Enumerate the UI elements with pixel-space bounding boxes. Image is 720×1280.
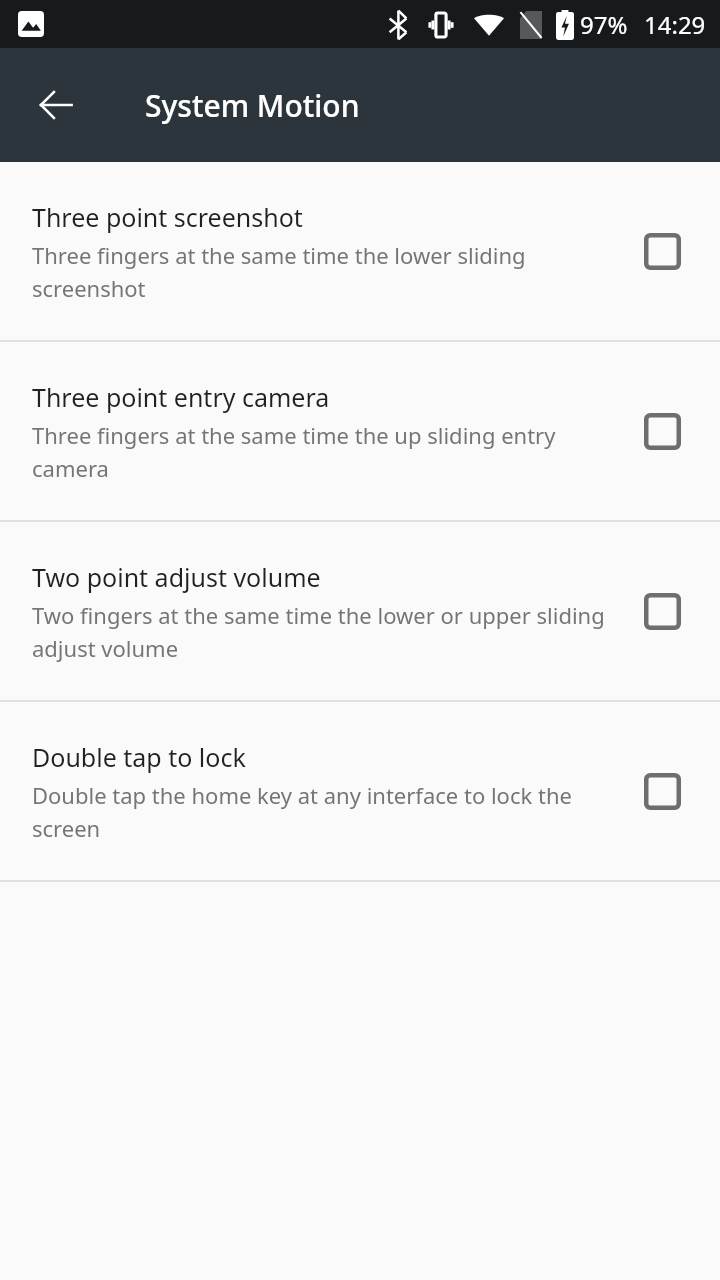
staticText: System Motion: [145, 85, 360, 126]
staticText: Two point adjust volume: [32, 560, 321, 594]
button[interactable]: Three point screenshot: [0, 162, 720, 340]
staticText: Double tap to lock: [32, 740, 246, 774]
button[interactable]: Double tap to lock: [0, 702, 720, 880]
staticText: 14:29: [644, 8, 706, 41]
button[interactable]: Double tap to lock checkbox: [634, 763, 690, 819]
staticText: Two fingers at the same time the lower o…: [32, 600, 614, 663]
staticText: Three point entry camera: [32, 380, 330, 414]
staticText: Three point screenshot: [32, 200, 303, 234]
staticText: 97%: [580, 8, 628, 41]
staticText: Three fingers at the same time the lower…: [32, 240, 614, 303]
button[interactable]: Two point adjust volume: [0, 522, 720, 700]
staticText: Three fingers at the same time the up sl…: [32, 420, 614, 483]
button[interactable]: Three point entry camera: [0, 342, 720, 520]
button[interactable]: Three point screenshot checkbox: [634, 223, 690, 279]
button[interactable]: Three point entry camera checkbox: [634, 403, 690, 459]
button[interactable]: Back: [20, 69, 92, 141]
staticText: Double tap the home key at any interface…: [32, 780, 614, 843]
button[interactable]: Two point adjust volume checkbox: [634, 583, 690, 639]
